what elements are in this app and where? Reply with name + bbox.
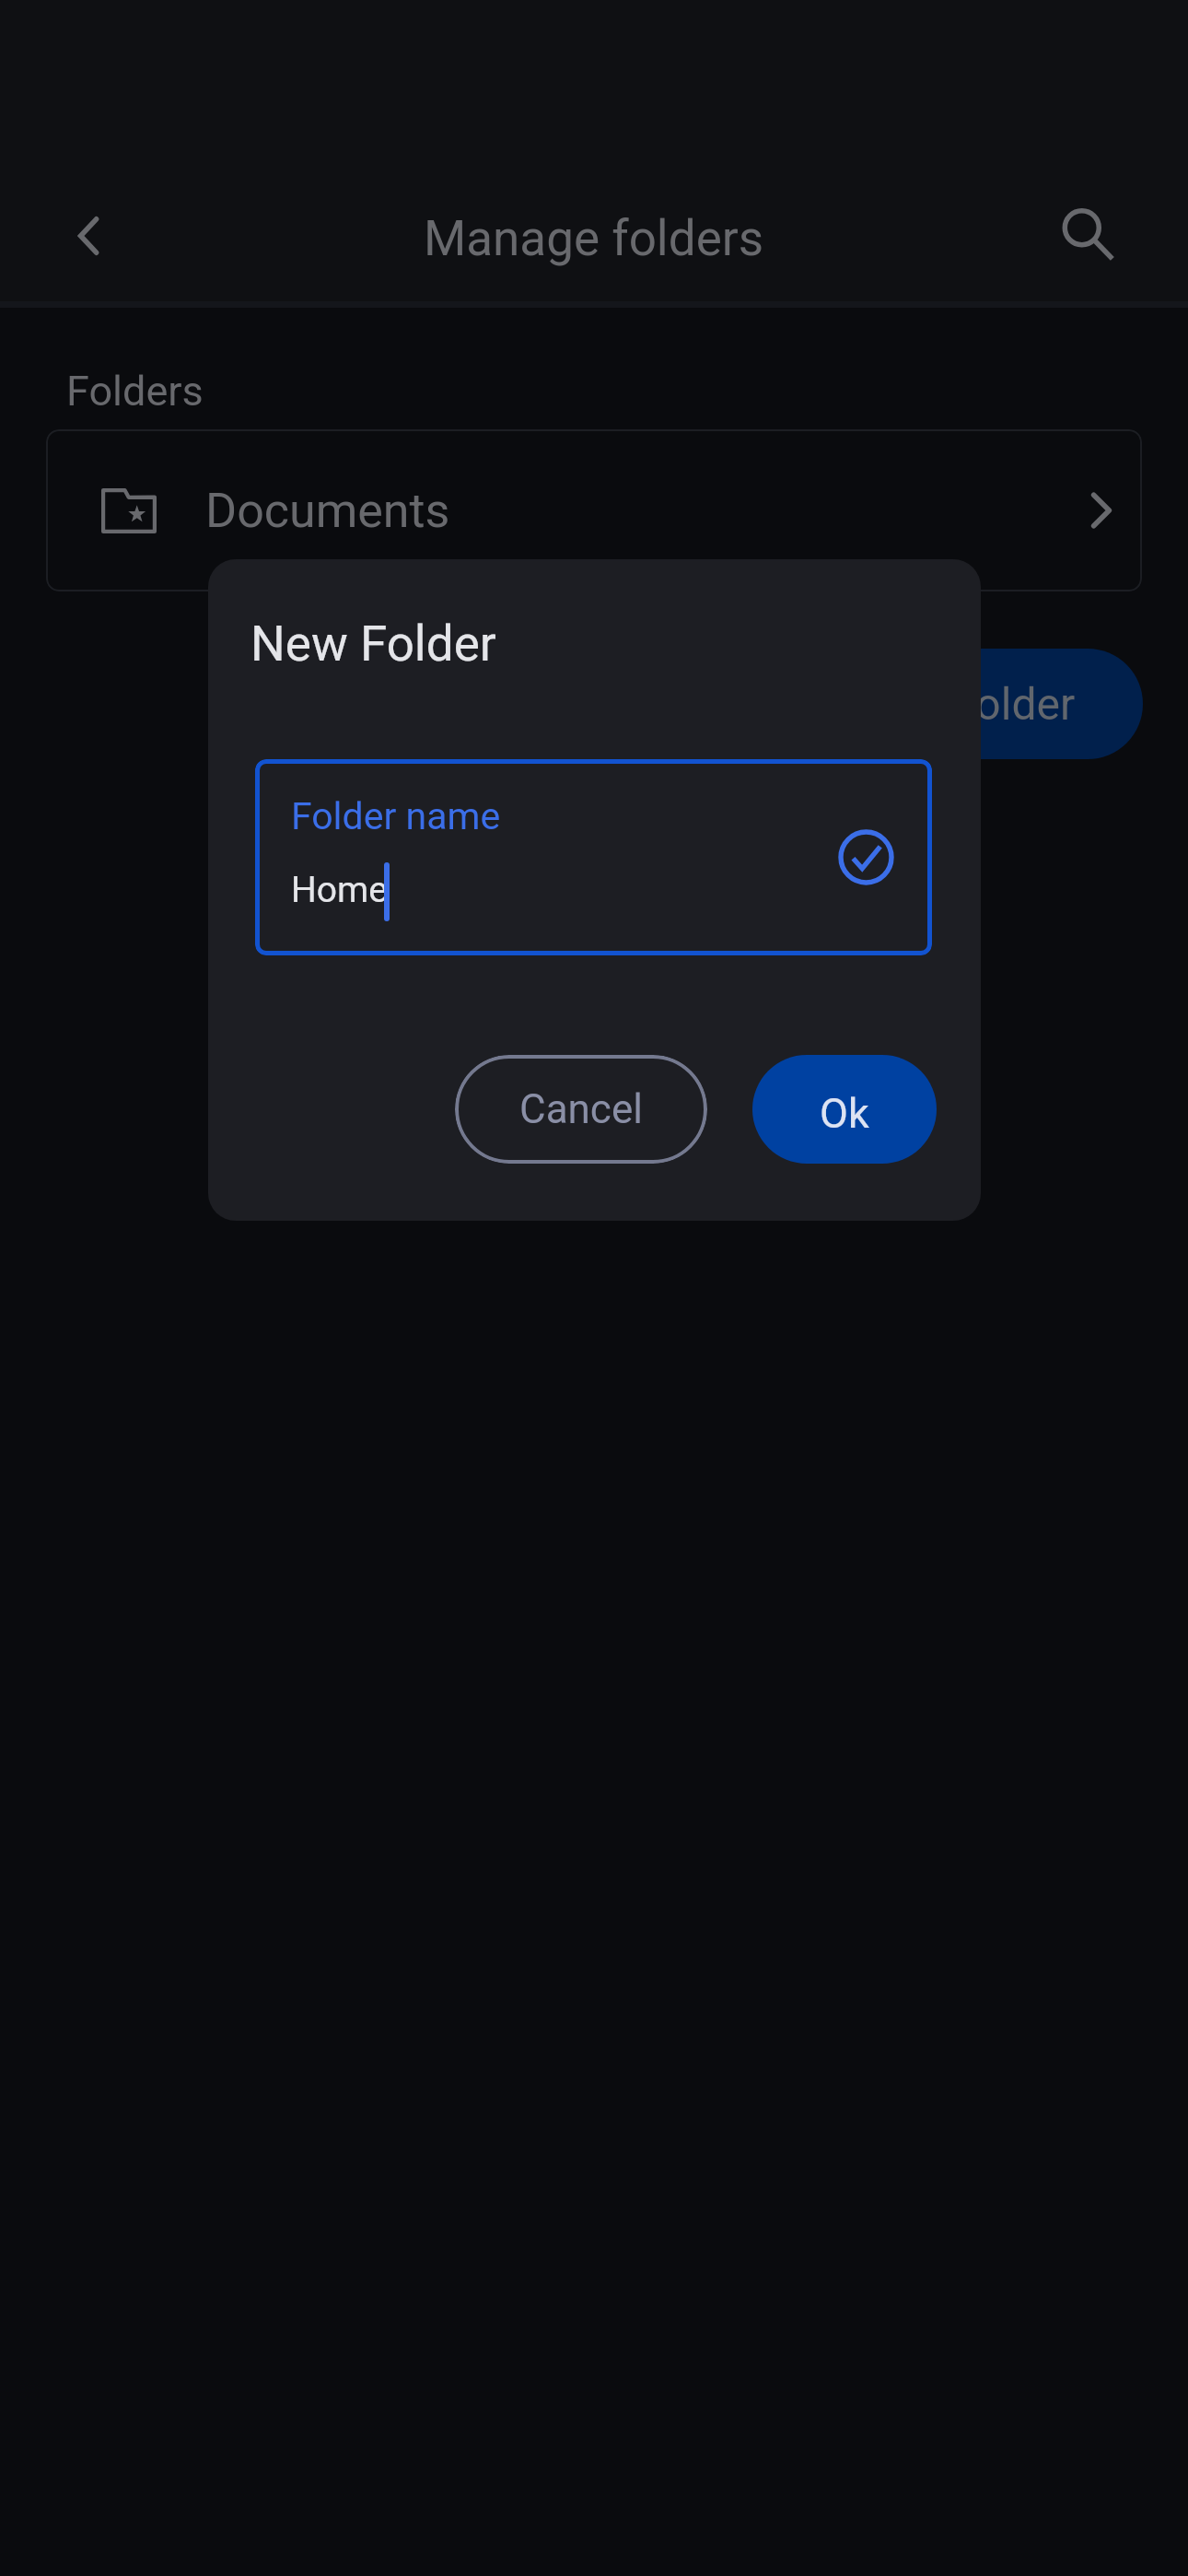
button[interactable]: Back: [46, 194, 129, 277]
staticText: Manage folders: [424, 210, 764, 267]
staticText: Ok: [820, 1089, 869, 1138]
staticText: Folders: [66, 367, 204, 416]
staticText: Documents: [205, 483, 450, 539]
button[interactable]: Confirm folder name: [830, 821, 902, 893]
staticText: New Folder: [250, 615, 496, 673]
button[interactable]: Folder name: [255, 759, 932, 955]
button[interactable]: Documents: [46, 429, 1142, 591]
staticText: Home: [291, 869, 388, 911]
button[interactable]: New folder: [808, 649, 1143, 759]
button[interactable]: Search: [1042, 189, 1131, 277]
staticText: Cancel: [519, 1085, 643, 1133]
staticText: Folder name: [291, 794, 501, 838]
staticText: New folder: [861, 678, 1076, 730]
button[interactable]: Ok: [752, 1055, 937, 1164]
button[interactable]: Cancel: [455, 1055, 707, 1164]
